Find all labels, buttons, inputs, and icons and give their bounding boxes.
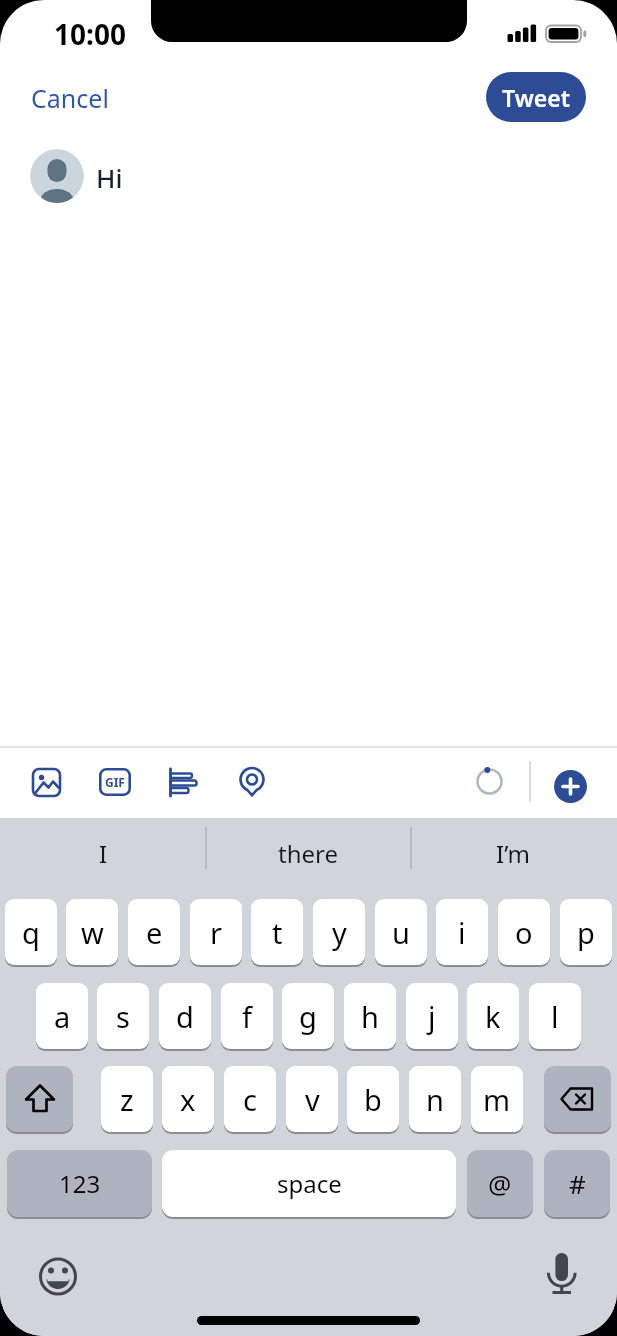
staticText: e bbox=[146, 913, 163, 952]
button[interactable]: @ bbox=[467, 1150, 533, 1217]
button[interactable] bbox=[545, 1250, 579, 1296]
button[interactable]: z bbox=[101, 1066, 153, 1132]
button[interactable]: v bbox=[286, 1066, 338, 1132]
staticText: f bbox=[242, 997, 252, 1036]
button[interactable]: e bbox=[128, 899, 180, 965]
button[interactable]: y bbox=[313, 899, 365, 965]
button[interactable]: I’m bbox=[421, 828, 605, 878]
button[interactable]: b bbox=[347, 1066, 399, 1132]
button[interactable] bbox=[28, 764, 66, 802]
staticText: l bbox=[551, 997, 559, 1036]
staticText: I’m bbox=[496, 837, 531, 870]
staticText: v bbox=[305, 1080, 320, 1119]
staticText: b bbox=[364, 1080, 382, 1119]
button[interactable] bbox=[238, 765, 266, 797]
staticText: d bbox=[176, 997, 194, 1036]
staticText: q bbox=[22, 913, 40, 952]
button[interactable]: q bbox=[5, 899, 57, 965]
button[interactable]: f bbox=[221, 983, 273, 1049]
button[interactable]: s bbox=[97, 983, 149, 1049]
staticText: o bbox=[515, 913, 533, 952]
button[interactable]: d bbox=[159, 983, 211, 1049]
button[interactable]: GIF bbox=[99, 768, 131, 796]
staticText: k bbox=[485, 997, 501, 1036]
button[interactable] bbox=[544, 1066, 611, 1132]
button[interactable]: g bbox=[282, 983, 334, 1049]
staticText: m bbox=[483, 1080, 511, 1119]
staticText: @ bbox=[488, 1166, 512, 1201]
button[interactable] bbox=[38, 1256, 78, 1296]
button[interactable]: u bbox=[375, 899, 427, 965]
button[interactable]: Tweet bbox=[486, 72, 586, 122]
staticText: i bbox=[458, 913, 466, 952]
button[interactable]: w bbox=[66, 899, 118, 965]
button[interactable]: I bbox=[40, 828, 166, 878]
staticText: r bbox=[210, 913, 222, 952]
staticText: h bbox=[361, 997, 379, 1036]
button[interactable]: x bbox=[162, 1066, 214, 1132]
button[interactable]: space bbox=[162, 1150, 456, 1217]
button[interactable]: h bbox=[344, 983, 396, 1049]
staticText: p bbox=[577, 913, 595, 952]
button[interactable] bbox=[554, 770, 587, 803]
button[interactable]: m bbox=[471, 1066, 523, 1132]
staticText: Cancel bbox=[31, 81, 109, 115]
button[interactable]: l bbox=[529, 983, 581, 1049]
button[interactable]: c bbox=[224, 1066, 276, 1132]
staticText: a bbox=[54, 997, 71, 1036]
staticText: # bbox=[569, 1166, 586, 1201]
staticText: j bbox=[428, 997, 436, 1036]
button[interactable]: r bbox=[190, 899, 242, 965]
button[interactable]: i bbox=[436, 899, 488, 965]
button[interactable]: Cancel bbox=[31, 81, 109, 115]
staticText: t bbox=[272, 913, 283, 952]
button[interactable]: j bbox=[406, 983, 458, 1049]
button[interactable]: 123 bbox=[7, 1150, 152, 1217]
button[interactable]: p bbox=[560, 899, 612, 965]
staticText: c bbox=[243, 1080, 257, 1119]
staticText: w bbox=[81, 913, 104, 952]
staticText: g bbox=[299, 997, 317, 1036]
staticText: there bbox=[278, 837, 338, 870]
staticText: GIF bbox=[105, 774, 125, 790]
button[interactable]: a bbox=[36, 983, 88, 1049]
staticText: s bbox=[116, 997, 130, 1036]
staticText: n bbox=[426, 1080, 444, 1119]
staticText: I bbox=[99, 837, 108, 870]
staticText: space bbox=[277, 1167, 342, 1200]
staticText: y bbox=[332, 913, 347, 952]
staticText: x bbox=[180, 1080, 196, 1119]
button[interactable]: t bbox=[251, 899, 303, 965]
staticText: 123 bbox=[59, 1167, 101, 1200]
button[interactable]: n bbox=[409, 1066, 461, 1132]
staticText: z bbox=[120, 1080, 134, 1119]
staticText: u bbox=[392, 913, 410, 952]
button[interactable]: # bbox=[544, 1150, 610, 1217]
button[interactable] bbox=[6, 1066, 73, 1132]
button[interactable]: k bbox=[467, 983, 519, 1049]
button[interactable]: o bbox=[498, 899, 550, 965]
button[interactable] bbox=[168, 768, 200, 798]
staticText: Tweet bbox=[502, 82, 570, 113]
staticText: 10:00 bbox=[54, 15, 126, 53]
staticText: Hi bbox=[96, 160, 123, 195]
button[interactable]: there bbox=[216, 828, 400, 878]
